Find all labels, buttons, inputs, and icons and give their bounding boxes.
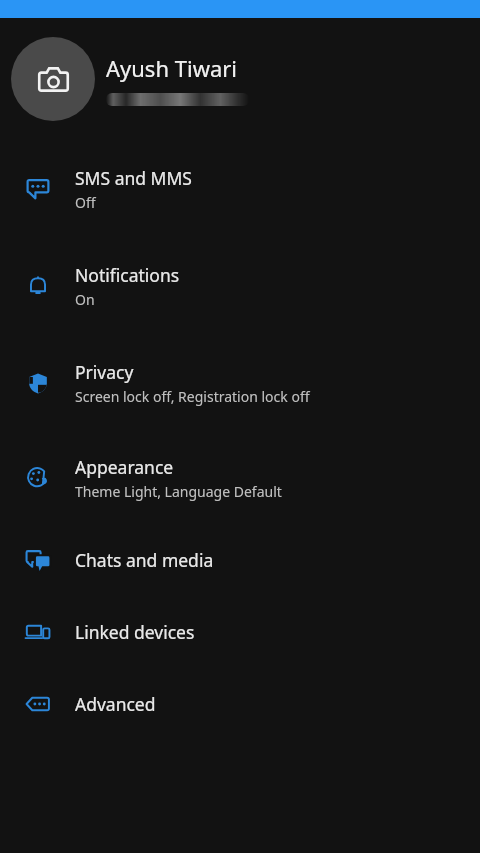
staticText: Appearance	[75, 455, 174, 479]
staticText: Theme Light, Language Default	[75, 482, 282, 501]
staticText: Privacy	[75, 360, 134, 384]
other: SMS and MMS	[0, 140, 75, 237]
staticText: Linked devices	[75, 620, 195, 644]
other: Chats and media	[0, 524, 75, 596]
staticText: Advanced	[75, 692, 156, 716]
other: Linked devices	[0, 596, 75, 668]
staticText: Ayush Tiwari	[106, 53, 238, 83]
button[interactable]: Linked devices	[0, 596, 480, 668]
other: Notifications	[0, 237, 75, 334]
staticText: Chats and media	[75, 548, 214, 572]
staticText: Notifications	[75, 263, 180, 287]
other: Change profile photo	[0, 18, 106, 140]
staticText: On	[75, 290, 95, 309]
button[interactable]: Notifications	[0, 237, 480, 334]
button[interactable]: Change profile photo	[0, 18, 480, 140]
staticText: SMS and MMS	[75, 166, 192, 190]
button[interactable]: Appearance	[0, 431, 480, 524]
button[interactable]: Chats and media	[0, 524, 480, 596]
button[interactable]: Privacy	[0, 334, 480, 431]
button[interactable]: Advanced	[0, 668, 480, 740]
staticText: Off	[75, 193, 96, 212]
staticText: Screen lock off, Registration lock off	[75, 387, 310, 406]
other: Advanced	[0, 668, 75, 740]
other: Appearance	[0, 431, 75, 524]
button[interactable]: SMS and MMS	[0, 140, 480, 237]
other: Privacy	[0, 334, 75, 431]
